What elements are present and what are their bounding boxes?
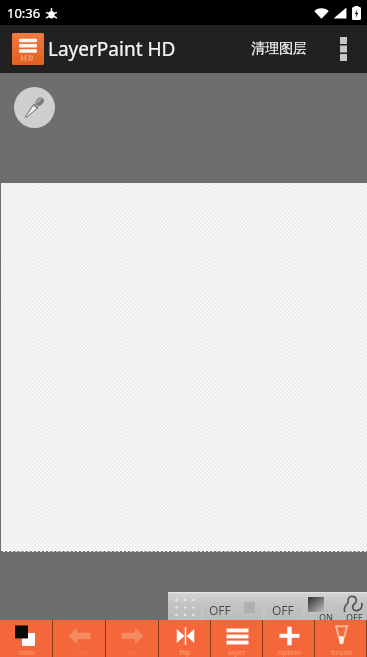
staticText: redo <box>124 647 141 657</box>
staticText: LayerPaint HD <box>48 36 176 62</box>
button[interactable]: option <box>263 620 315 657</box>
button[interactable]: Tool options panel <box>168 592 367 623</box>
staticText: flip <box>179 647 191 657</box>
staticText: layer <box>228 647 246 657</box>
staticText: OFF <box>209 602 231 618</box>
button[interactable]: brush <box>315 620 367 657</box>
staticText: color <box>18 647 36 657</box>
button[interactable]: App icon <box>12 33 44 65</box>
button[interactable]: layer <box>211 620 263 657</box>
staticText: ON <box>319 611 334 623</box>
button[interactable]: redo <box>106 620 159 657</box>
staticText: option <box>278 647 301 657</box>
button[interactable]: 清理图层 <box>243 28 324 70</box>
button[interactable]: flip <box>159 620 211 657</box>
staticText: 10:36 <box>7 4 41 22</box>
staticText: 清理图层 <box>251 40 307 58</box>
button[interactable]: undo <box>53 620 106 657</box>
button[interactable]: Color picker <box>14 87 55 128</box>
staticText: undo <box>70 647 89 657</box>
staticText: OFF <box>272 602 294 618</box>
button[interactable]: color <box>0 620 53 657</box>
button[interactable]: More options <box>324 25 362 73</box>
staticText: OFF <box>346 611 363 623</box>
staticText: brush <box>331 647 352 657</box>
